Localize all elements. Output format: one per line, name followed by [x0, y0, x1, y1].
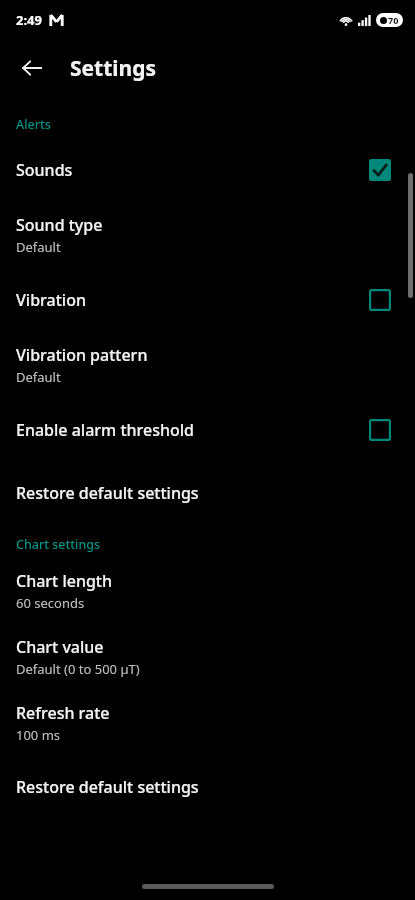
staticText: 100 ms — [16, 726, 61, 744]
button[interactable]: Sounds — [0, 138, 415, 202]
button[interactable]: Unchecked — [358, 408, 402, 452]
button[interactable]: Checked — [358, 148, 402, 192]
staticText: Alerts — [16, 116, 51, 133]
staticText: Refresh rate — [16, 702, 110, 724]
button[interactable]: Chart value — [0, 624, 415, 690]
staticText: Chart length — [16, 570, 113, 592]
button[interactable]: Restore default settings — [0, 756, 415, 818]
staticText: Default — [16, 368, 61, 386]
staticText: Sound type — [16, 214, 103, 236]
staticText: Default (0 to 500 µT) — [16, 660, 140, 678]
staticText: 2:49 — [16, 11, 42, 29]
button[interactable]: Unchecked — [358, 278, 402, 322]
button[interactable]: Restore default settings — [0, 462, 415, 524]
button[interactable]: Enable alarm threshold — [0, 398, 415, 462]
button[interactable]: Vibration — [0, 268, 415, 332]
button[interactable]: Sound type — [0, 202, 415, 268]
staticText: Vibration — [16, 289, 86, 311]
button[interactable]: Refresh rate — [0, 690, 415, 756]
staticText: Vibration pattern — [16, 344, 148, 366]
staticText: Sounds — [16, 159, 73, 181]
staticText: Chart value — [16, 636, 104, 658]
staticText: Restore default settings — [16, 482, 199, 504]
button[interactable]: Back — [8, 44, 56, 92]
button[interactable]: Vibration pattern — [0, 332, 415, 398]
staticText: 70 — [388, 14, 399, 26]
staticText: 60 seconds — [16, 594, 85, 612]
staticText: Default — [16, 238, 61, 256]
staticText: Enable alarm threshold — [16, 419, 195, 441]
staticText: Restore default settings — [16, 776, 199, 798]
button[interactable]: Chart length — [0, 558, 415, 624]
staticText: Chart settings — [16, 536, 101, 553]
staticText: Settings — [70, 54, 157, 83]
